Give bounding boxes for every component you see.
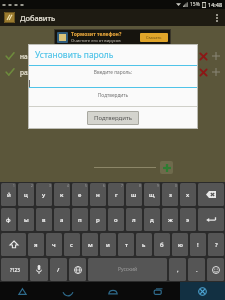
button[interactable]: Скачать <box>140 33 168 42</box>
button[interactable]: Backspace <box>198 183 224 206</box>
button[interactable]: в <box>36 208 52 231</box>
button[interactable]: т <box>118 233 134 256</box>
staticText: д <box>150 216 154 224</box>
button[interactable]: ц <box>18 183 34 206</box>
button[interactable]: л <box>126 208 142 231</box>
button[interactable]: Reorder <box>212 68 220 76</box>
button[interactable]: Done <box>5 48 220 64</box>
staticText: , <box>177 266 179 274</box>
staticText: й <box>7 191 11 199</box>
staticText: я <box>34 241 38 249</box>
staticText: Тормозит телефон? <box>71 31 122 38</box>
staticText: о <box>114 216 118 224</box>
other: Done <box>5 51 15 61</box>
button[interactable]: м <box>82 233 98 256</box>
button[interactable]: ? <box>208 233 224 256</box>
button[interactable]: н <box>90 183 106 206</box>
button[interactable]: Emoji <box>207 258 224 281</box>
staticText: 4 <box>67 184 69 188</box>
staticText: с <box>70 241 74 249</box>
button[interactable]: щ <box>144 183 160 206</box>
button[interactable]: р <box>90 208 106 231</box>
button[interactable]: и <box>100 233 116 256</box>
button[interactable]: о <box>108 208 124 231</box>
button[interactable]: ч <box>46 233 62 256</box>
staticText: 8 <box>139 184 141 188</box>
button[interactable]: / <box>50 258 67 281</box>
button[interactable]: у <box>36 183 52 206</box>
button[interactable]: Русский <box>88 258 167 281</box>
button[interactable]: Language <box>69 258 86 281</box>
button[interactable]: с <box>64 233 80 256</box>
staticText: щ <box>149 191 155 199</box>
button[interactable]: , <box>169 258 186 281</box>
button[interactable]: Shift <box>1 233 26 256</box>
staticText: 15% <box>190 1 200 8</box>
staticText: Подтвердить <box>28 92 198 99</box>
button[interactable]: Done <box>5 64 220 80</box>
staticText: в <box>42 216 46 224</box>
button[interactable]: д <box>144 208 160 231</box>
staticText: разбудить <box>20 68 52 77</box>
staticText: ы <box>24 216 29 224</box>
staticText: п <box>78 216 82 224</box>
button[interactable]: ш <box>126 183 142 206</box>
button[interactable]: ж <box>162 208 178 231</box>
staticText: а <box>60 216 64 224</box>
button[interactable]: Enter <box>198 208 224 231</box>
button[interactable]: Delete <box>199 52 208 61</box>
staticText: 0 <box>175 184 177 188</box>
staticText: 5 <box>85 184 87 188</box>
button[interactable]: ь <box>136 233 152 256</box>
staticText: ж <box>168 216 173 224</box>
button[interactable]: з <box>162 183 178 206</box>
button[interactable]: й <box>1 183 16 206</box>
button[interactable]: е <box>72 183 88 206</box>
staticText: л <box>132 216 136 224</box>
button[interactable]: Recents <box>135 282 180 300</box>
staticText: 9 <box>157 184 159 188</box>
button[interactable]: ы <box>18 208 34 231</box>
staticText: т <box>125 241 128 249</box>
staticText: ф <box>6 216 11 224</box>
button[interactable]: г <box>108 183 124 206</box>
button[interactable]: э <box>180 208 196 231</box>
button[interactable]: Подтвердить <box>94 114 132 122</box>
staticText: Русский <box>118 266 138 273</box>
staticText: Введите пароль: <box>28 69 198 76</box>
button[interactable]: Reorder <box>212 52 220 60</box>
button[interactable]: Add task <box>160 161 173 174</box>
other: Done <box>5 67 15 77</box>
staticText: ?123 <box>10 267 20 273</box>
staticText: и <box>106 241 110 249</box>
button[interactable]: а <box>54 208 70 231</box>
button[interactable]: ю <box>172 233 188 256</box>
staticText: Установить пароль <box>35 49 114 61</box>
button[interactable]: Minimize <box>45 282 90 300</box>
button[interactable]: More options <box>209 10 225 26</box>
button[interactable]: . <box>188 258 205 281</box>
button[interactable]: к <box>54 183 70 206</box>
button[interactable]: ! <box>190 233 206 256</box>
button[interactable]: Multi window <box>180 282 225 300</box>
button[interactable]: ?123 <box>1 258 28 281</box>
staticText: е <box>78 191 82 199</box>
button[interactable]: Тормозит телефон? <box>57 29 168 46</box>
button[interactable]: б <box>154 233 170 256</box>
staticText: 6 <box>103 184 105 188</box>
button[interactable]: я <box>28 233 44 256</box>
staticText: м <box>88 241 93 249</box>
staticText: б <box>160 241 164 249</box>
button[interactable]: п <box>72 208 88 231</box>
button[interactable]: Home <box>90 282 135 300</box>
staticText: 14:48 <box>208 1 223 8</box>
button[interactable]: Voice input <box>30 258 48 281</box>
button[interactable]: Delete <box>199 68 208 77</box>
button[interactable]: Back <box>0 282 45 300</box>
button[interactable]: х <box>180 183 196 206</box>
button[interactable]: ф <box>1 208 16 231</box>
staticText: 7 <box>121 184 123 188</box>
staticText: Очистите его от вирусов <box>71 38 121 44</box>
staticText: ? <box>215 241 218 249</box>
staticText: ! <box>197 241 199 249</box>
